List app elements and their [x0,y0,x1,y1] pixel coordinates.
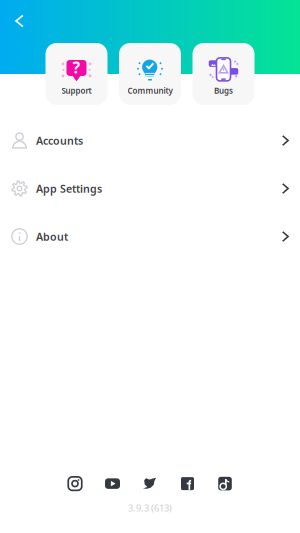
button[interactable]: Accounts [0,116,300,164]
button[interactable]: About [0,212,300,260]
button[interactable]: Community [119,43,181,105]
staticText: Support [61,85,91,96]
button[interactable]: Bugs [192,43,254,105]
button[interactable]: Twitter [131,474,169,494]
button[interactable]: App Settings [0,164,300,212]
staticText: App Settings [36,181,102,196]
staticText: Bugs [214,85,233,96]
staticText: Community [127,85,172,96]
staticText: About [36,229,68,244]
staticText: Accounts [36,133,83,148]
button[interactable]: Back [0,5,37,37]
staticText: 3.9.3 (613) [128,502,172,514]
button[interactable]: ? [45,43,107,105]
staticText: ? [72,57,80,78]
button[interactable]: TikTok [206,474,244,494]
button[interactable]: Instagram [56,474,94,494]
button[interactable]: Facebook [169,474,206,494]
button[interactable]: YouTube [94,474,131,494]
